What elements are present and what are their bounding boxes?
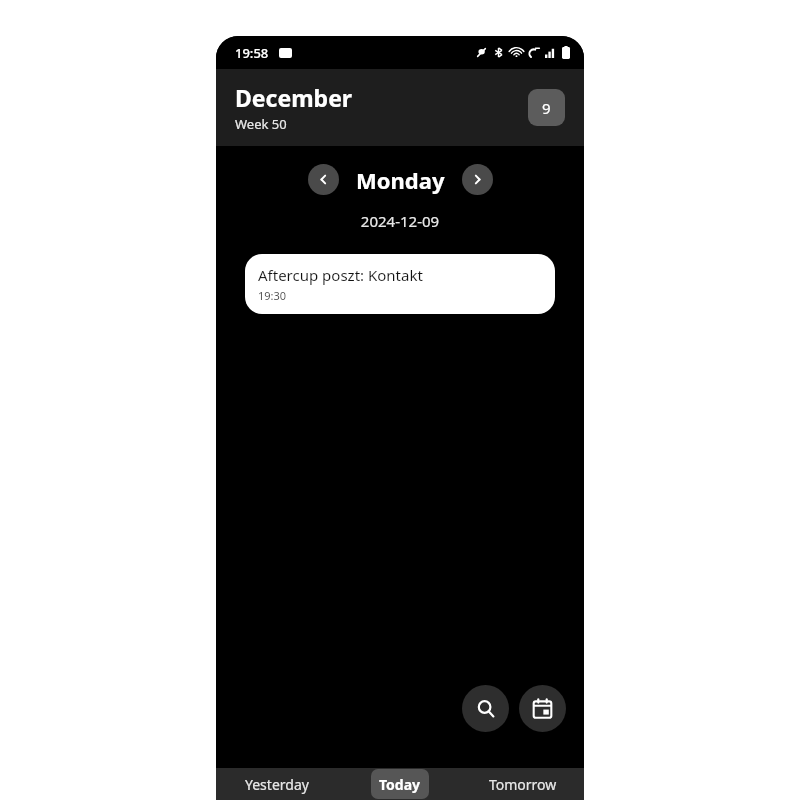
- button[interactable]: Search: [462, 685, 509, 732]
- staticText: 19:30: [258, 288, 287, 303]
- staticText: Yesterday: [245, 775, 309, 794]
- button[interactable]: Today: [338, 768, 461, 800]
- staticText: Monday: [356, 165, 445, 195]
- staticText: Aftercup poszt: Kontakt: [258, 265, 423, 285]
- button[interactable]: Previous day: [308, 164, 339, 195]
- button[interactable]: Yesterday: [216, 768, 338, 800]
- staticText: 2024-12-09: [216, 211, 584, 231]
- button[interactable]: 9: [528, 89, 565, 126]
- button[interactable]: Calendar: [519, 685, 566, 732]
- staticText: Tomorrow: [489, 775, 557, 794]
- button[interactable]: Tomorrow: [461, 768, 584, 800]
- staticText: Today: [379, 775, 421, 794]
- staticText: Week 50: [235, 115, 287, 133]
- staticText: 9: [542, 98, 551, 118]
- staticText: December: [235, 82, 353, 113]
- button[interactable]: Next day: [462, 164, 493, 195]
- staticText: 19:58: [235, 44, 269, 62]
- button[interactable]: Aftercup poszt: Kontakt: [245, 254, 555, 314]
